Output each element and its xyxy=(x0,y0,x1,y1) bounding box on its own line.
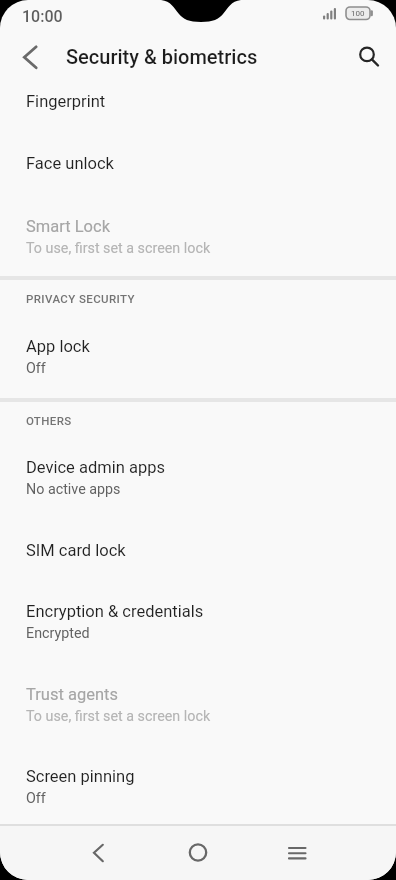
button[interactable] xyxy=(354,41,386,73)
staticText: Off xyxy=(26,360,46,377)
staticText: Smart Lock xyxy=(26,217,111,236)
button[interactable] xyxy=(174,824,222,880)
staticText: To use, first set a screen lock xyxy=(26,240,211,257)
button[interactable]: Device admin apps xyxy=(0,437,396,519)
button[interactable] xyxy=(12,42,44,74)
button[interactable]: Screen pinning xyxy=(0,746,396,828)
button[interactable]: SIM card lock xyxy=(0,519,396,581)
button[interactable]: Trust agents xyxy=(0,664,396,746)
staticText: SIM card lock xyxy=(26,541,126,560)
staticText: Encryption & credentials xyxy=(26,602,204,621)
staticText: OTHERS xyxy=(26,414,72,427)
staticText: PRIVACY SECURITY xyxy=(26,292,135,305)
staticText: Fingerprint xyxy=(26,92,106,111)
staticText: Trust agents xyxy=(26,685,118,704)
staticText: Face unlock xyxy=(26,154,114,173)
button[interactable] xyxy=(75,824,123,880)
button[interactable]: Smart Lock xyxy=(0,196,396,278)
staticText: No active apps xyxy=(26,481,121,498)
button[interactable]: Face unlock xyxy=(0,132,396,194)
button[interactable] xyxy=(273,824,321,880)
staticText: Security & biometrics xyxy=(66,45,258,68)
staticText: Encrypted xyxy=(26,625,90,642)
button[interactable]: Encryption & credentials xyxy=(0,581,396,663)
staticText: To use, first set a screen lock xyxy=(26,708,211,725)
button[interactable]: Fingerprint xyxy=(0,70,396,132)
staticText: App lock xyxy=(26,337,90,356)
staticText: 10:00 xyxy=(22,7,63,26)
staticText: 100 xyxy=(351,9,365,18)
button[interactable]: App lock xyxy=(0,316,396,398)
staticText: Off xyxy=(26,790,46,807)
staticText: Screen pinning xyxy=(26,767,135,786)
staticText: Device admin apps xyxy=(26,458,165,477)
